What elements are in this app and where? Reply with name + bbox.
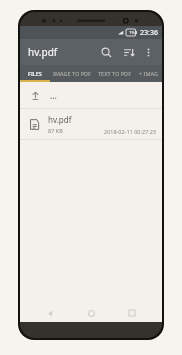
- button[interactable]: hv.pdf: [20, 109, 162, 139]
- button[interactable]: + IMAG: [136, 65, 162, 82]
- button[interactable]: Search: [96, 42, 116, 62]
- button[interactable]: ...: [20, 82, 162, 108]
- button[interactable]: FILES: [20, 65, 50, 82]
- button[interactable]: More options: [139, 43, 157, 61]
- staticText: 23:36: [140, 28, 158, 38]
- staticText: 1%: [129, 30, 135, 35]
- staticText: IMAGE TO PDF: [53, 70, 91, 77]
- button[interactable]: TEXT TO PDF: [94, 65, 136, 82]
- staticText: hv.pdf: [48, 114, 72, 125]
- button[interactable]: Sort: [118, 42, 138, 62]
- button[interactable]: Home: [80, 304, 102, 322]
- staticText: FILES: [28, 70, 42, 77]
- staticText: TEXT TO PDF: [98, 70, 132, 77]
- button[interactable]: Back: [39, 304, 61, 322]
- staticText: hv.pdf: [28, 45, 96, 59]
- staticText: ...: [50, 90, 57, 101]
- button[interactable]: IMAGE TO PDF: [50, 65, 94, 82]
- staticText: 2018-02-11 00:27:23: [104, 128, 156, 135]
- staticText: 87 KB: [48, 127, 63, 134]
- button[interactable]: Recents: [121, 304, 143, 322]
- staticText: + IMAG: [139, 70, 159, 77]
